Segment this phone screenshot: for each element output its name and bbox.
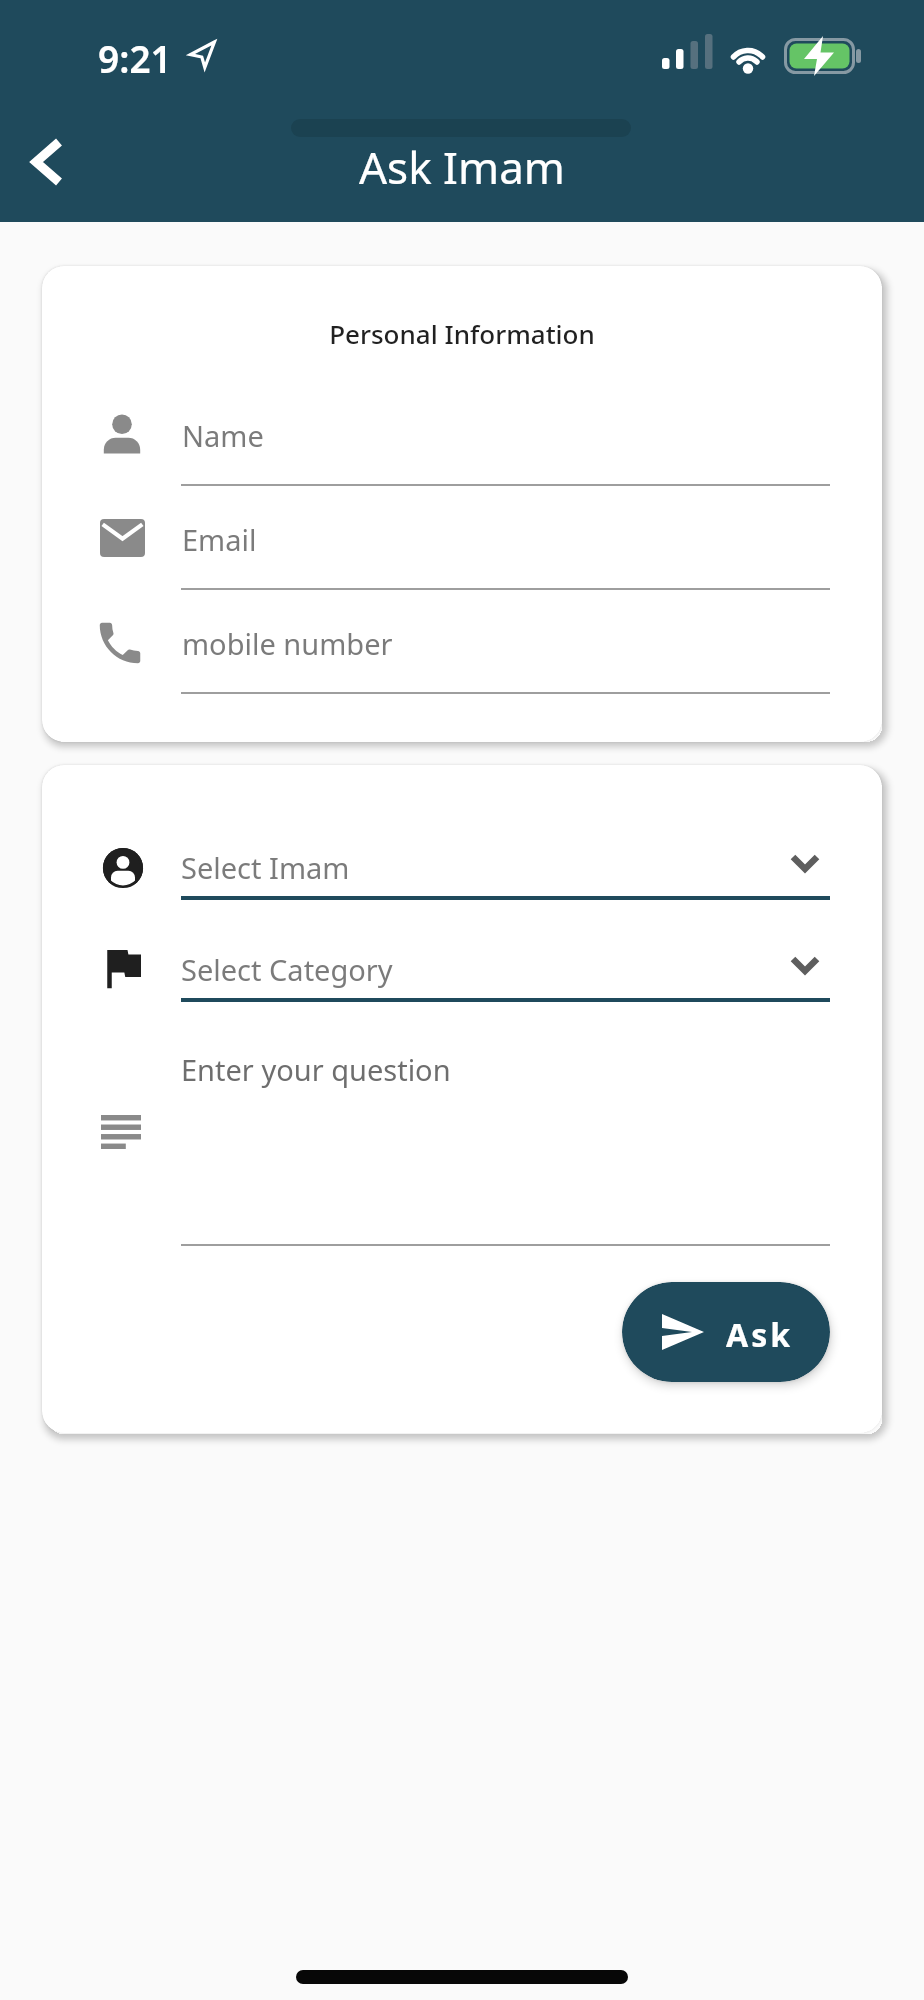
staticText: Ask Imam [0, 137, 924, 197]
staticText: Ask [726, 1313, 794, 1357]
staticText: Email [182, 520, 257, 559]
staticText: Personal Information [42, 316, 882, 351]
button[interactable]: Select Imam [162, 835, 830, 901]
staticText: Select Imam [181, 848, 350, 887]
staticText: Enter your question [181, 1050, 451, 1089]
staticText: Name [182, 416, 264, 455]
staticText: mobile number [182, 624, 393, 663]
staticText: Select Category [181, 950, 393, 989]
staticText: 9:21 [98, 33, 172, 83]
button[interactable]: Ask [622, 1282, 830, 1382]
button[interactable] [10, 136, 86, 192]
button[interactable]: Select Category [162, 937, 830, 1003]
